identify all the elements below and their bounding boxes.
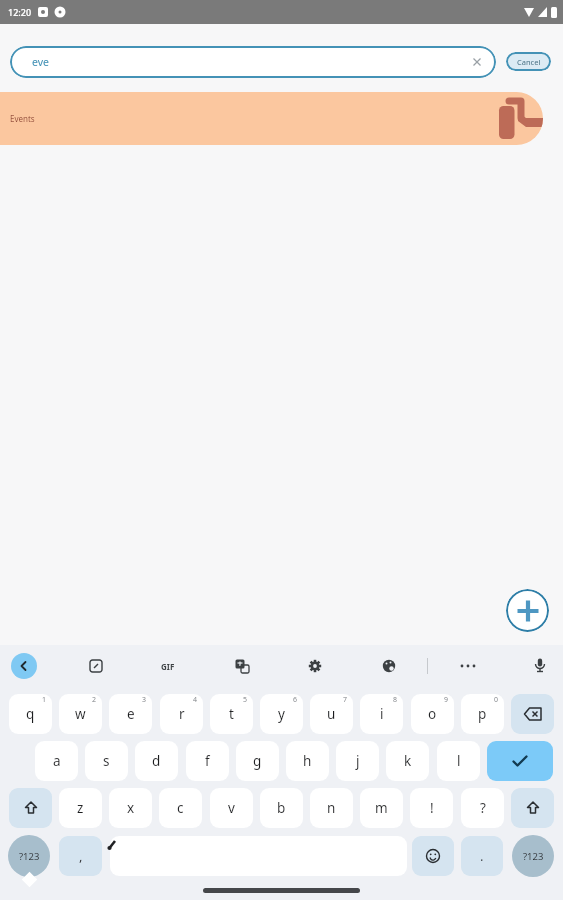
button[interactable]: d bbox=[135, 741, 178, 781]
staticText: s bbox=[103, 752, 110, 770]
button[interactable]: y bbox=[260, 694, 303, 734]
button[interactable]: ? bbox=[461, 788, 504, 828]
button[interactable] bbox=[412, 836, 454, 876]
staticText: t bbox=[229, 705, 234, 723]
staticText: p bbox=[478, 705, 487, 723]
staticText: j bbox=[356, 752, 360, 770]
button[interactable]: e bbox=[109, 694, 152, 734]
staticText: ?123 bbox=[19, 850, 40, 863]
button[interactable] bbox=[87, 657, 105, 675]
staticText: r bbox=[179, 705, 185, 723]
button[interactable]: , bbox=[59, 836, 102, 876]
staticText: z bbox=[77, 799, 84, 817]
staticText: 12:20 bbox=[8, 6, 32, 18]
button[interactable]: h bbox=[286, 741, 329, 781]
staticText: u bbox=[327, 705, 336, 723]
staticText: q bbox=[26, 705, 35, 723]
staticText: eve bbox=[32, 55, 49, 69]
staticText: , bbox=[79, 847, 83, 865]
button[interactable]: c bbox=[159, 788, 202, 828]
button[interactable]: . bbox=[461, 836, 503, 876]
button[interactable]: ?123 bbox=[8, 835, 50, 877]
staticText: 2 bbox=[92, 695, 97, 705]
staticText: g bbox=[253, 752, 262, 770]
staticText: ?123 bbox=[523, 850, 544, 863]
staticText: v bbox=[228, 799, 235, 817]
button[interactable] bbox=[506, 589, 549, 632]
button[interactable] bbox=[306, 657, 324, 675]
staticText: 8 bbox=[393, 695, 398, 705]
button[interactable]: b bbox=[260, 788, 303, 828]
button[interactable] bbox=[380, 657, 398, 675]
button[interactable]: eve bbox=[10, 46, 496, 78]
staticText: ? bbox=[480, 799, 486, 817]
staticText: m bbox=[375, 799, 388, 817]
button[interactable]: Cancel bbox=[506, 52, 551, 71]
button[interactable]: m bbox=[360, 788, 403, 828]
staticText: 1 bbox=[42, 695, 47, 705]
staticText: w bbox=[75, 705, 86, 723]
button[interactable]: p bbox=[461, 694, 504, 734]
staticText: 5 bbox=[243, 695, 248, 705]
button[interactable]: o bbox=[411, 694, 454, 734]
button[interactable]: n bbox=[310, 788, 353, 828]
button[interactable]: ?123 bbox=[512, 835, 554, 877]
button[interactable]: g bbox=[236, 741, 279, 781]
staticText: o bbox=[428, 705, 437, 723]
staticText: GIF bbox=[161, 661, 175, 672]
button[interactable] bbox=[457, 658, 479, 674]
staticText: e bbox=[127, 705, 135, 723]
staticText: a bbox=[53, 752, 61, 770]
button[interactable]: x bbox=[109, 788, 152, 828]
button[interactable]: w bbox=[59, 694, 102, 734]
button[interactable] bbox=[110, 836, 407, 876]
staticText: 7 bbox=[343, 695, 348, 705]
button[interactable]: s bbox=[85, 741, 128, 781]
staticText: d bbox=[152, 752, 161, 770]
button[interactable]: q bbox=[9, 694, 52, 734]
button[interactable] bbox=[531, 656, 549, 674]
button[interactable] bbox=[233, 657, 251, 675]
staticText: x bbox=[127, 799, 135, 817]
button[interactable]: k bbox=[386, 741, 429, 781]
button[interactable]: ! bbox=[410, 788, 453, 828]
staticText: l bbox=[457, 752, 461, 770]
button[interactable] bbox=[9, 788, 52, 828]
staticText: . bbox=[480, 847, 484, 865]
staticText: y bbox=[278, 705, 285, 723]
button[interactable]: a bbox=[35, 741, 78, 781]
staticText: Events bbox=[10, 113, 35, 124]
button[interactable]: t bbox=[210, 694, 253, 734]
button[interactable] bbox=[487, 741, 553, 781]
staticText: f bbox=[205, 752, 210, 770]
staticText: i bbox=[380, 705, 384, 723]
staticText: 4 bbox=[193, 695, 198, 705]
staticText: Cancel bbox=[517, 57, 541, 67]
button[interactable] bbox=[511, 788, 554, 828]
button[interactable]: v bbox=[210, 788, 253, 828]
button[interactable]: j bbox=[336, 741, 379, 781]
button[interactable]: z bbox=[59, 788, 102, 828]
staticText: b bbox=[277, 799, 286, 817]
staticText: h bbox=[303, 752, 312, 770]
staticText: k bbox=[404, 752, 412, 770]
staticText: 3 bbox=[142, 695, 147, 705]
button[interactable]: l bbox=[437, 741, 480, 781]
staticText: ! bbox=[430, 799, 434, 817]
button[interactable]: i bbox=[360, 694, 403, 734]
button[interactable]: r bbox=[160, 694, 203, 734]
staticText: n bbox=[327, 799, 336, 817]
button[interactable]: GIF bbox=[156, 658, 180, 674]
button[interactable] bbox=[511, 694, 554, 734]
staticText: c bbox=[177, 799, 184, 817]
staticText: 6 bbox=[293, 695, 298, 705]
button[interactable]: Events bbox=[0, 92, 543, 145]
button[interactable]: u bbox=[310, 694, 353, 734]
button[interactable]: f bbox=[186, 741, 229, 781]
staticText: 9 bbox=[444, 695, 449, 705]
button[interactable] bbox=[11, 653, 37, 679]
staticText: 0 bbox=[494, 695, 499, 705]
